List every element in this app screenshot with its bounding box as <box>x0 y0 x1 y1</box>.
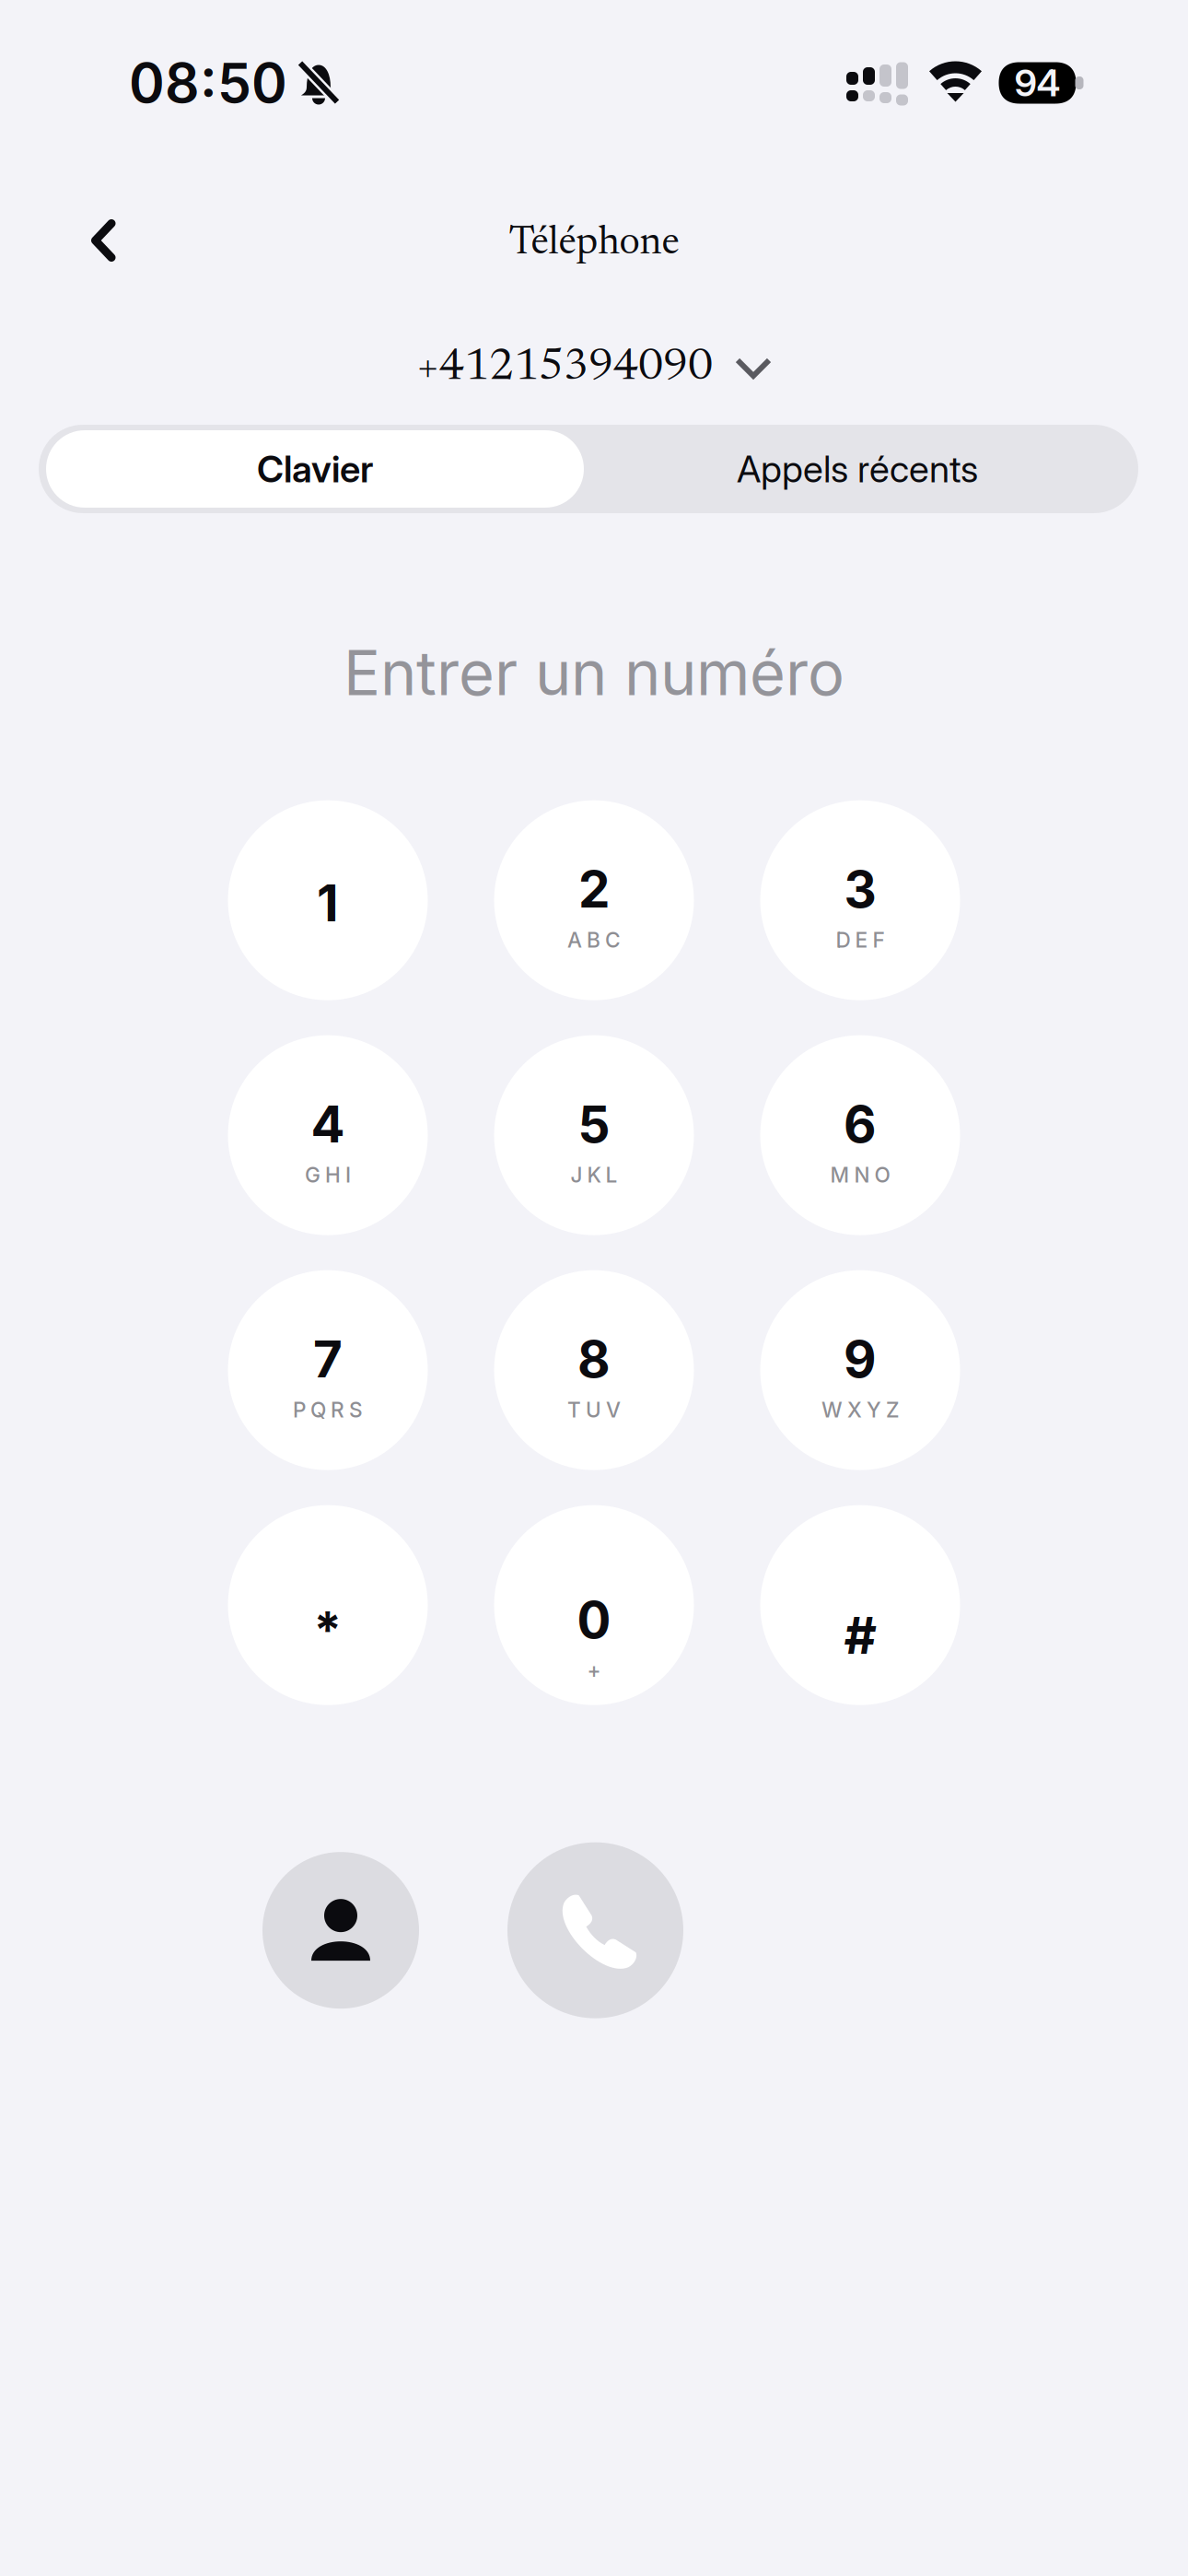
button[interactable]: 0 <box>494 1505 694 1705</box>
staticText: TUV <box>567 1397 621 1422</box>
button[interactable]: # <box>760 1505 960 1705</box>
button[interactable]: 7 <box>228 1270 428 1470</box>
staticText: JKL <box>571 1162 617 1187</box>
button[interactable]: 2 <box>494 800 694 1000</box>
staticText: GHI <box>305 1162 351 1187</box>
button[interactable]: 6 <box>760 1035 960 1235</box>
button[interactable]: 5 <box>494 1035 694 1235</box>
staticText: WXYZ <box>821 1397 899 1422</box>
staticText: * <box>314 1599 342 1660</box>
staticText: 08:50 <box>129 50 287 116</box>
staticText: +41215394090 <box>416 346 713 391</box>
staticText: 7 <box>313 1329 343 1390</box>
staticText: 8 <box>577 1329 611 1390</box>
button[interactable]: Contacts <box>262 1852 419 2009</box>
button[interactable]: +41215394090 <box>416 336 772 390</box>
staticText: 1 <box>317 873 339 933</box>
staticText: 94 <box>1014 61 1060 105</box>
button[interactable]: 1 <box>228 800 428 1000</box>
staticText: PQRS <box>293 1397 363 1422</box>
staticText: 6 <box>844 1094 877 1155</box>
staticText: 0 <box>577 1589 611 1650</box>
button[interactable]: 9 <box>760 1270 960 1470</box>
staticText: # <box>844 1605 876 1666</box>
staticText: 4 <box>311 1094 345 1155</box>
staticText: 2 <box>578 859 610 920</box>
button[interactable]: 4 <box>228 1035 428 1235</box>
staticText: DEF <box>836 927 885 953</box>
button[interactable]: Appels récents <box>584 430 1131 508</box>
button[interactable]: * <box>228 1505 428 1705</box>
staticText: 3 <box>844 859 876 920</box>
staticText: Téléphone <box>509 225 679 264</box>
staticText: ABC <box>567 927 621 953</box>
staticText: 9 <box>844 1329 877 1390</box>
button[interactable]: Back <box>62 199 145 282</box>
button[interactable]: Clavier <box>46 430 584 508</box>
staticText: + <box>587 1658 601 1683</box>
button[interactable]: 3 <box>760 800 960 1000</box>
button[interactable]: 8 <box>494 1270 694 1470</box>
staticText: 5 <box>578 1094 610 1155</box>
staticText: MNO <box>830 1162 890 1187</box>
button[interactable]: Call <box>507 1842 683 2018</box>
staticText: Appels récents <box>737 447 978 491</box>
staticText: Clavier <box>257 447 373 491</box>
staticText: Entrer un numéro <box>344 636 844 710</box>
